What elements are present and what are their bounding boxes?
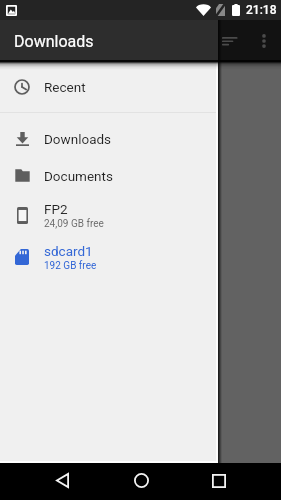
- button[interactable]: FP2: [0, 194, 218, 236]
- staticText: 24,09 GB free: [44, 218, 104, 230]
- button[interactable]: Recents: [199, 462, 239, 499]
- button[interactable]: Sort: [211, 23, 247, 59]
- button[interactable]: Documents: [0, 157, 218, 194]
- staticText: sdcard1: [44, 243, 93, 259]
- staticText: Recent: [44, 79, 86, 95]
- button[interactable]: Recent: [0, 62, 218, 112]
- button[interactable]: More options: [247, 24, 281, 58]
- staticText: 21:18: [246, 3, 277, 17]
- staticText: FP2: [44, 201, 68, 217]
- button[interactable]: Back: [42, 462, 82, 499]
- staticText: 192 GB free: [44, 260, 97, 272]
- staticText: Documents: [44, 168, 113, 184]
- staticText: Downloads: [14, 32, 94, 51]
- button[interactable]: sdcard1: [0, 236, 218, 278]
- button[interactable]: Downloads: [0, 120, 218, 157]
- button[interactable]: Home: [121, 462, 161, 499]
- staticText: Downloads: [44, 131, 112, 147]
